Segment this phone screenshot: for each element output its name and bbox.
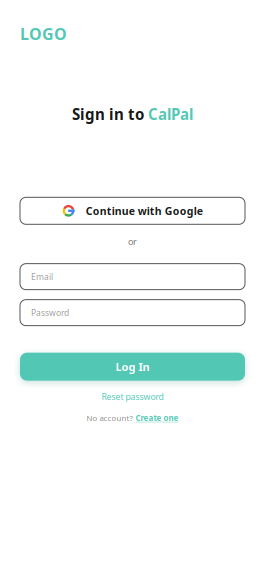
staticText: No account? xyxy=(86,413,132,423)
button[interactable]: Reset password xyxy=(0,391,265,403)
staticText: Email xyxy=(31,271,53,282)
staticText: Log In xyxy=(115,359,149,374)
staticText: Reset password xyxy=(101,391,163,403)
staticText: Create one xyxy=(135,413,178,423)
staticText: Continue with Google xyxy=(86,204,203,218)
staticText: LOGO xyxy=(20,23,67,45)
staticText: or xyxy=(128,235,137,248)
staticText: Password xyxy=(31,307,69,318)
button[interactable]: Continue with Google xyxy=(20,197,245,224)
button[interactable]: Create one xyxy=(135,413,178,423)
staticText: CalPal xyxy=(148,104,193,124)
button[interactable]: Log In xyxy=(20,353,245,381)
staticText: Sign in to xyxy=(72,104,148,124)
